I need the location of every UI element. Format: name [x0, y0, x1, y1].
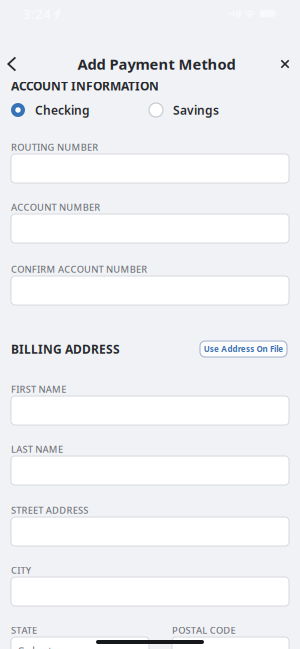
staticText: Add Payment Method	[77, 54, 235, 74]
staticText: FIRST NAME	[11, 383, 66, 392]
button[interactable]: Checking	[11, 102, 149, 118]
staticText: Select...	[18, 643, 61, 649]
staticText: STREET ADDRESS	[11, 504, 88, 513]
staticText: Use Address On File	[204, 344, 283, 354]
button[interactable]: Savings	[149, 102, 219, 118]
button[interactable]: Back	[0, 51, 25, 77]
staticText: LAST NAME	[11, 443, 63, 452]
staticText: CONFIRM ACCOUNT NUMBER	[11, 263, 147, 272]
staticText: ROUTING NUMBER	[11, 141, 98, 150]
staticText: Savings	[173, 102, 219, 118]
staticText: STATE	[11, 624, 37, 633]
staticText: POSTAL CODE	[172, 624, 235, 633]
staticText: CITY	[11, 564, 31, 573]
staticText: ACCOUNT NUMBER	[11, 201, 100, 210]
staticText: BILLING ADDRESS	[11, 341, 120, 357]
button[interactable]: Use Address On File	[200, 341, 287, 357]
staticText: ACCOUNT INFORMATION	[11, 78, 159, 88]
button[interactable]: Select...	[11, 637, 149, 649]
button[interactable]: Close	[272, 51, 298, 77]
staticText: Checking	[35, 102, 90, 118]
